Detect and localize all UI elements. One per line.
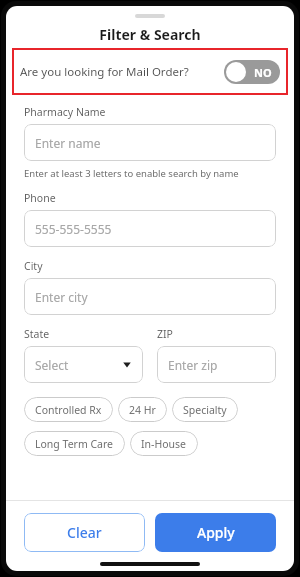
button[interactable]: Enter name <box>24 124 276 161</box>
staticText: Enter at least 3 letters to enable searc… <box>24 167 239 180</box>
button[interactable]: 24 Hr <box>118 397 167 422</box>
staticText: 24 Hr <box>129 403 156 417</box>
button[interactable]: Apply <box>155 513 276 552</box>
button[interactable]: Enter city <box>24 278 276 315</box>
button[interactable]: 555-555-5555 <box>24 210 276 247</box>
staticText: Apply <box>197 523 235 542</box>
staticText: Pharmacy Name <box>24 105 106 119</box>
staticText: Are you looking for Mail Order? <box>20 64 189 80</box>
button[interactable]: Clear <box>24 513 145 552</box>
button[interactable]: Are you looking for Mail Order? <box>12 48 288 95</box>
button[interactable]: Select <box>24 346 143 383</box>
staticText: Enter zip <box>168 357 218 373</box>
button[interactable]: Controlled Rx <box>24 397 113 422</box>
staticText: 555-555-5555 <box>35 221 112 237</box>
staticText: ZIP <box>157 327 173 341</box>
button[interactable]: Long Term Care <box>24 431 125 456</box>
staticText: Specialty <box>183 403 227 417</box>
staticText: Clear <box>67 523 102 542</box>
staticText: Phone <box>24 191 56 205</box>
button[interactable]: In-House <box>130 431 198 456</box>
button[interactable]: Specialty <box>172 397 238 422</box>
staticText: In-House <box>141 437 187 451</box>
staticText: City <box>24 259 43 273</box>
button[interactable]: Enter zip <box>157 346 276 383</box>
staticText: Controlled Rx <box>35 403 102 417</box>
staticText: Enter name <box>35 135 101 151</box>
staticText: Filter & Search <box>99 25 201 44</box>
button[interactable]: Mail Order toggle, off <box>224 60 280 84</box>
staticText: Select <box>35 357 69 373</box>
staticText: State <box>24 327 50 341</box>
staticText: Enter city <box>35 289 88 305</box>
staticText: Long Term Care <box>35 437 114 451</box>
staticText: NO <box>254 65 272 80</box>
